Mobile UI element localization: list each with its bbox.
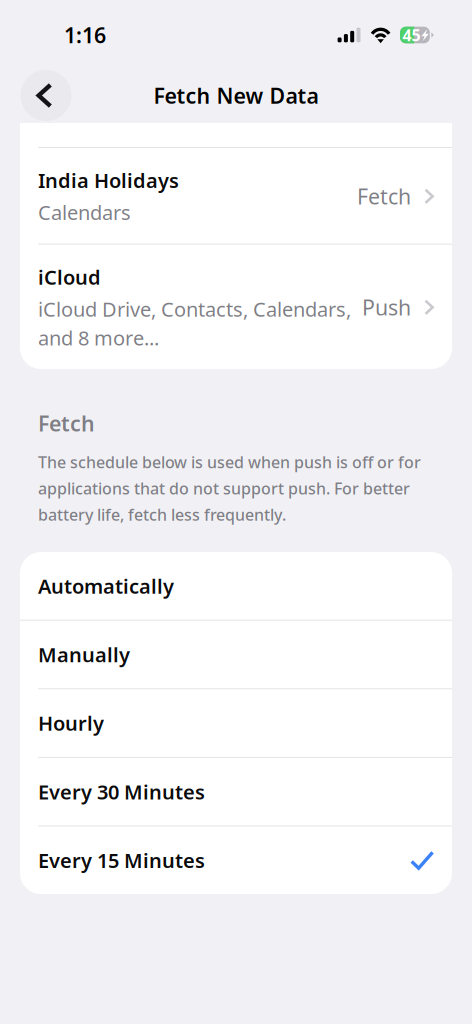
staticText: The schedule below is used when push is … bbox=[38, 451, 421, 525]
staticText: 45 bbox=[402, 24, 420, 46]
button[interactable]: iCloud bbox=[20, 245, 452, 369]
button[interactable]: Every 15 Minutes bbox=[20, 826, 452, 894]
staticText: Every 15 Minutes bbox=[38, 847, 205, 874]
staticText: Fetch New Data bbox=[153, 81, 318, 110]
staticText: 1:16 bbox=[64, 21, 106, 49]
button[interactable]: Back bbox=[20, 70, 71, 121]
staticText: Fetch bbox=[357, 182, 411, 210]
button[interactable]: Every 30 Minutes bbox=[20, 758, 452, 825]
staticText: iCloud Drive, Contacts, Calendars, and 8… bbox=[38, 296, 351, 351]
staticText: Calendars bbox=[38, 199, 131, 226]
staticText: iCloud bbox=[38, 264, 101, 290]
button[interactable]: India Holidays bbox=[20, 148, 452, 244]
staticText: Manually bbox=[38, 641, 130, 668]
staticText: India Holidays bbox=[38, 167, 179, 194]
staticText: Every 30 Minutes bbox=[38, 778, 205, 805]
staticText: Fetch bbox=[38, 409, 95, 437]
button[interactable]: Hourly bbox=[20, 689, 452, 757]
button[interactable]: Automatically bbox=[20, 552, 452, 620]
button[interactable]: Manually bbox=[20, 621, 452, 688]
staticText: Automatically bbox=[38, 573, 174, 599]
staticText: Push bbox=[362, 293, 411, 321]
staticText: Hourly bbox=[38, 710, 104, 736]
